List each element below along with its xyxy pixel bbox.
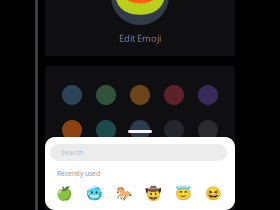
- button[interactable]: Emoji: [109, 186, 139, 201]
- button[interactable]: Background colour: [191, 120, 225, 140]
- button[interactable]: Emoji: [139, 186, 169, 201]
- button[interactable]: Background colour: [123, 120, 157, 140]
- button[interactable]: Search: [45, 137, 235, 161]
- button[interactable]: Background colour: [157, 85, 191, 105]
- button[interactable]: Background colour: [157, 120, 191, 140]
- staticText: 🍏: [56, 186, 73, 201]
- button[interactable]: Emoji: [50, 186, 80, 201]
- button[interactable]: Emoji: [80, 186, 109, 201]
- staticText: 😆: [205, 186, 222, 201]
- staticText: 🥶: [86, 186, 103, 201]
- button[interactable]: Background colour: [55, 120, 89, 140]
- button[interactable]: Background colour: [89, 85, 123, 105]
- button[interactable]: Background colour: [123, 85, 157, 105]
- button[interactable]: Avatar: [111, 0, 169, 25]
- staticText: Search: [61, 148, 83, 157]
- staticText: 🤠: [145, 186, 162, 201]
- button[interactable]: Edit Emoji: [119, 25, 161, 44]
- staticText: 🐸: [112, 0, 168, 17]
- button[interactable]: Background colour: [89, 120, 123, 140]
- staticText: 😇: [175, 186, 192, 201]
- button[interactable]: Background colour: [191, 85, 225, 105]
- staticText: 🐎: [116, 186, 133, 201]
- staticText: Recently used: [57, 169, 100, 178]
- button[interactable]: Emoji: [169, 186, 198, 201]
- button[interactable]: Emoji: [198, 186, 228, 201]
- staticText: Edit Emoji: [119, 32, 161, 44]
- button[interactable]: Background colour: [55, 85, 89, 105]
